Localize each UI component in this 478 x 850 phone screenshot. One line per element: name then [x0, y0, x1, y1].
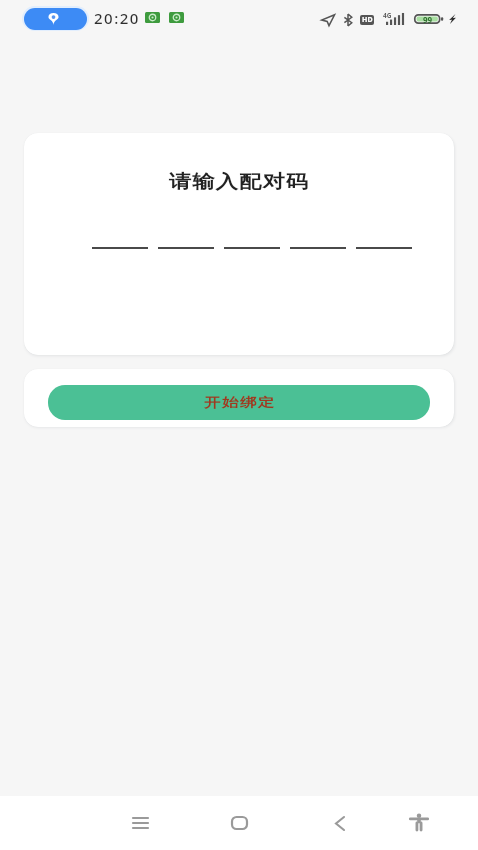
staticText: 4G [383, 11, 392, 20]
button[interactable]: Back [308, 796, 372, 850]
staticText: 开始绑定 [204, 394, 276, 411]
staticText: 20:20 [94, 8, 140, 28]
staticText: HD [362, 15, 373, 25]
button[interactable]: 开始绑定 [48, 385, 430, 420]
staticText: 99 [423, 14, 433, 24]
staticText: 请输入配对码 [24, 169, 454, 192]
button[interactable]: Pairing code digit 1 [92, 219, 148, 249]
button[interactable]: Pairing code digit 3 [224, 219, 280, 249]
button[interactable]: Pairing code digit 2 [158, 219, 214, 249]
button[interactable]: Accessibility [387, 796, 451, 850]
button[interactable]: Home [207, 796, 271, 850]
button[interactable]: Pairing code digit 4 [290, 219, 346, 249]
button[interactable]: Recent apps [108, 796, 172, 850]
button[interactable]: Pairing code digit 5 [356, 219, 412, 249]
